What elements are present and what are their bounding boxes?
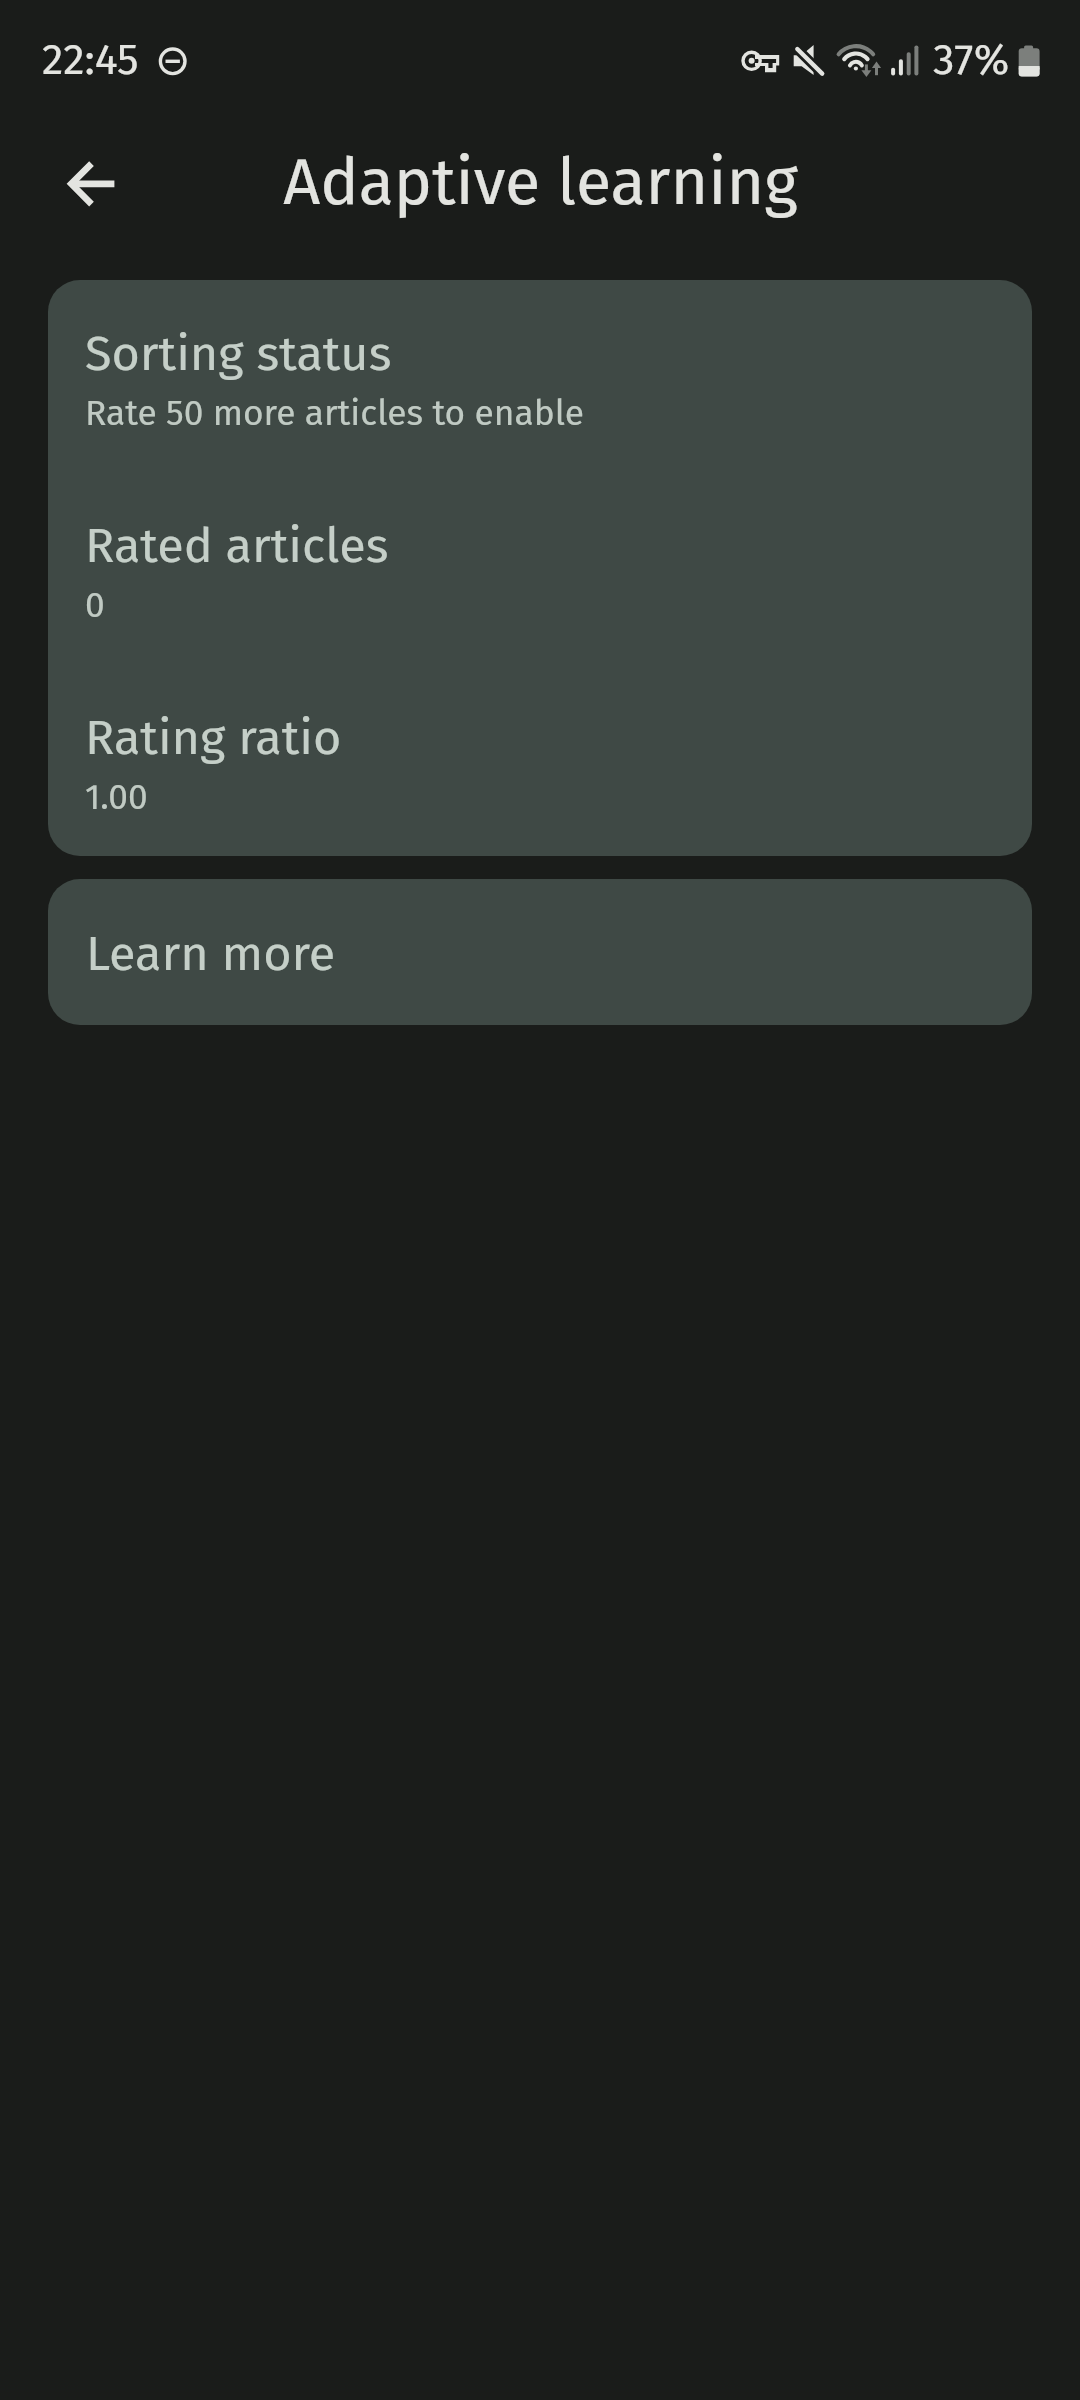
staticText: 0 <box>85 584 105 626</box>
staticText: Adaptive learning <box>283 144 798 221</box>
staticText: Learn more <box>86 925 336 983</box>
staticText: 1.00 <box>85 776 148 818</box>
button[interactable]: Learn more <box>48 879 1032 1025</box>
staticText: 37% <box>933 34 1010 86</box>
button[interactable]: Back <box>56 151 122 217</box>
staticText: Rate 50 more articles to enable <box>85 392 585 434</box>
button[interactable]: Sorting status <box>48 280 1032 472</box>
staticText: Rated articles <box>85 517 389 575</box>
button[interactable]: Rated articles <box>48 472 1032 664</box>
staticText: Rating ratio <box>85 709 342 767</box>
staticText: Sorting status <box>85 325 392 383</box>
staticText: 22:45 <box>42 34 139 86</box>
button[interactable]: Rating ratio <box>48 664 1032 856</box>
